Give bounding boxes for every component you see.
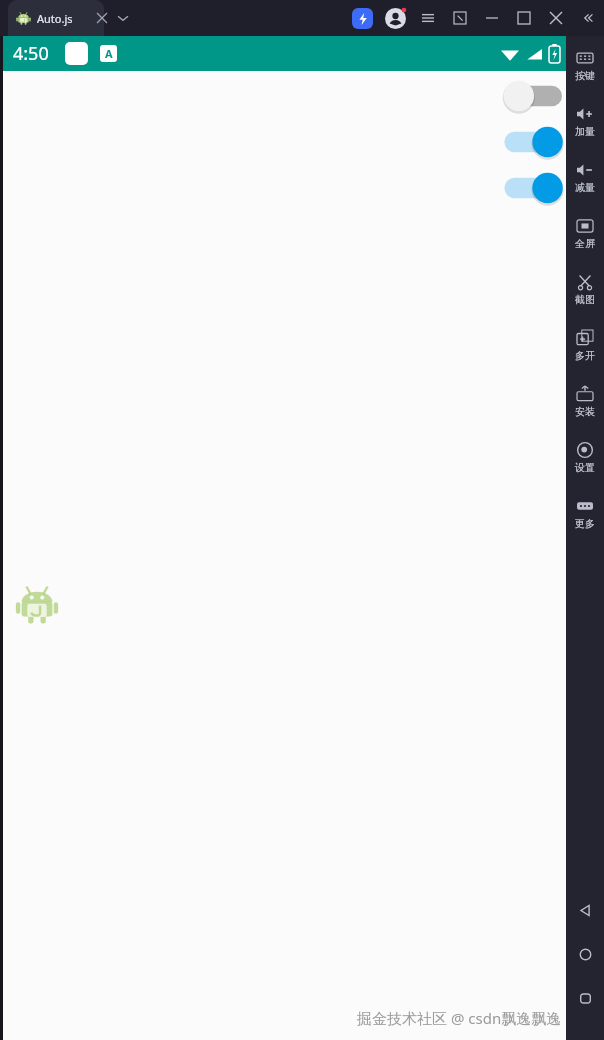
staticText: Auto.js xyxy=(37,11,73,26)
button[interactable]: Tab list xyxy=(105,0,141,36)
button[interactable]: 减量 xyxy=(566,150,604,206)
button[interactable]: 按键 xyxy=(566,38,604,94)
button[interactable]: 设置 xyxy=(566,430,604,486)
button[interactable]: Collapse xyxy=(572,2,604,34)
button[interactable]: Switch on xyxy=(498,169,578,207)
staticText: A xyxy=(105,46,113,61)
staticText: 安装 xyxy=(575,405,595,418)
staticText: 全屏 xyxy=(575,237,595,250)
button[interactable]: Close tab xyxy=(84,0,120,36)
button[interactable]: 加量 xyxy=(566,94,604,150)
button[interactable]: Switch on xyxy=(498,123,578,161)
staticText: 多开 xyxy=(575,349,595,362)
button[interactable]: Menu xyxy=(412,2,444,34)
staticText: 减量 xyxy=(575,181,595,194)
staticText: 掘金技术社区 @ csdn飘逸飘逸 xyxy=(357,1008,562,1028)
button[interactable]: Boost xyxy=(346,2,378,34)
button[interactable]: 安装 xyxy=(566,374,604,430)
button[interactable]: 多开 xyxy=(566,318,604,374)
button[interactable]: 更多 xyxy=(566,486,604,542)
staticText: 更多 xyxy=(575,517,595,530)
button[interactable]: Home xyxy=(566,932,604,976)
button[interactable]: 截图 xyxy=(566,262,604,318)
button[interactable]: Account xyxy=(378,1,412,35)
button[interactable]: Auto.js xyxy=(8,0,104,36)
button[interactable]: Close xyxy=(540,2,572,34)
button[interactable]: Minimize xyxy=(476,2,508,34)
staticText: 按键 xyxy=(575,69,595,82)
staticText: 截图 xyxy=(575,293,595,306)
staticText: 设置 xyxy=(575,461,595,474)
button[interactable]: 全屏 xyxy=(566,206,604,262)
button[interactable]: Recents xyxy=(566,976,604,1020)
button[interactable]: Maximize xyxy=(508,2,540,34)
staticText: 4:50 xyxy=(13,41,49,66)
button[interactable]: Resize xyxy=(444,2,476,34)
staticText: 加量 xyxy=(575,125,595,138)
button[interactable]: Back xyxy=(566,888,604,932)
button[interactable]: Switch off xyxy=(498,77,578,115)
